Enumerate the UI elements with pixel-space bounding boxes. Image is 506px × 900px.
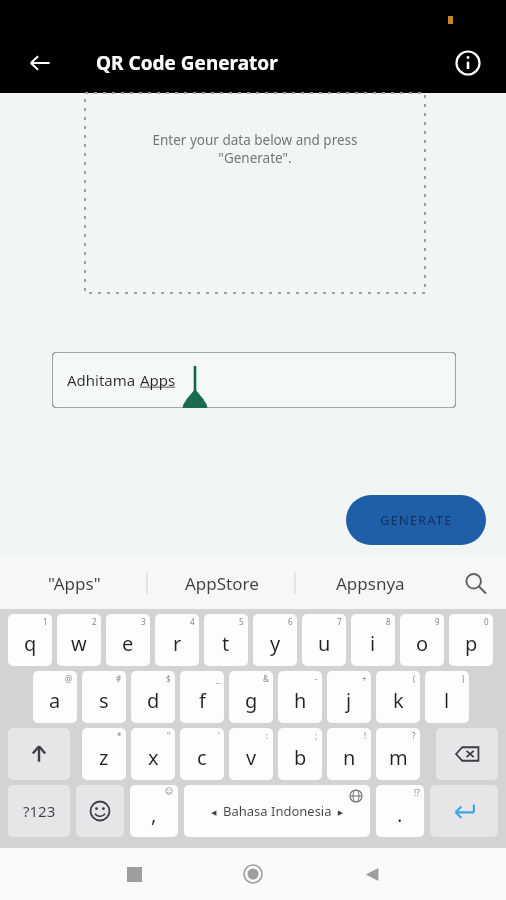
button[interactable]: .	[376, 785, 424, 837]
staticText: ?	[412, 730, 416, 741]
staticText: !	[364, 730, 367, 741]
staticText: )	[462, 673, 465, 684]
button[interactable]: o	[400, 614, 444, 666]
button[interactable]: GENERATE	[346, 495, 486, 545]
button[interactable]: Enter	[430, 785, 498, 837]
staticText: GENERATE	[380, 511, 453, 529]
staticText: k	[393, 687, 404, 714]
button[interactable]: e	[106, 614, 150, 666]
button[interactable]: d	[131, 671, 175, 723]
staticText: b	[294, 744, 307, 771]
staticText: @	[65, 673, 73, 684]
staticText: 8	[386, 616, 391, 627]
button[interactable]: s	[82, 671, 126, 723]
staticText: ,	[151, 801, 157, 828]
staticText: j	[346, 687, 352, 714]
staticText: 5	[239, 616, 244, 627]
staticText: !?	[414, 787, 420, 798]
button[interactable]: Backspace	[436, 728, 498, 780]
button[interactable]: y	[253, 614, 297, 666]
button[interactable]: j	[327, 671, 371, 723]
staticText: f	[199, 687, 206, 714]
staticText: z	[99, 744, 109, 771]
staticText: Appsnya	[336, 572, 405, 595]
staticText: y	[270, 630, 281, 657]
staticText: Bahasa Indonesia	[223, 802, 332, 820]
button[interactable]: Appsnya	[296, 557, 444, 609]
button[interactable]: m	[376, 728, 420, 780]
button[interactable]: Adhitama	[52, 352, 456, 408]
button[interactable]: h	[278, 671, 322, 723]
staticText: Apps	[140, 370, 176, 390]
staticText: g	[245, 687, 258, 714]
staticText: i	[370, 630, 376, 657]
staticText: #	[116, 673, 122, 684]
button[interactable]: Recent apps	[112, 852, 156, 896]
button[interactable]: t	[204, 614, 248, 666]
staticText: '	[218, 730, 220, 741]
button[interactable]: Back	[350, 852, 394, 896]
button[interactable]: Shift	[8, 728, 70, 780]
button[interactable]: Space	[184, 785, 370, 837]
staticText: 4	[190, 616, 195, 627]
staticText: 0	[484, 616, 489, 627]
staticText: -	[315, 673, 318, 684]
button[interactable]: r	[155, 614, 199, 666]
button[interactable]: a	[33, 671, 77, 723]
staticText: r	[173, 630, 182, 657]
staticText: ;	[315, 730, 318, 741]
staticText: .	[397, 801, 403, 828]
button[interactable]: Emoji	[76, 785, 124, 837]
button[interactable]: b	[278, 728, 322, 780]
staticText: 3	[141, 616, 146, 627]
button[interactable]: u	[302, 614, 346, 666]
staticText: 6	[288, 616, 293, 627]
button[interactable]: Back	[18, 41, 62, 85]
button[interactable]: Home	[231, 852, 275, 896]
button[interactable]: v	[229, 728, 273, 780]
staticText: d	[147, 687, 160, 714]
staticText: "	[167, 730, 171, 741]
staticText: ?123	[23, 801, 56, 821]
button[interactable]: q	[8, 614, 52, 666]
button[interactable]: ,	[130, 785, 178, 837]
staticText: m	[389, 744, 408, 771]
button[interactable]: l	[425, 671, 469, 723]
staticText: AppStore	[185, 572, 259, 595]
staticText: ☺	[165, 787, 174, 796]
button[interactable]: Symbols	[8, 785, 70, 837]
staticText: p	[465, 630, 478, 657]
staticText: ▸	[332, 804, 344, 819]
staticText: 9	[435, 616, 440, 627]
button[interactable]: c	[180, 728, 224, 780]
button[interactable]: Search	[444, 557, 506, 609]
button[interactable]: n	[327, 728, 371, 780]
staticText: s	[99, 687, 109, 714]
staticText: 7	[337, 616, 342, 627]
button[interactable]: x	[131, 728, 175, 780]
button[interactable]: AppStore	[148, 557, 296, 609]
staticText: $	[166, 673, 171, 684]
button[interactable]: k	[376, 671, 420, 723]
staticText: u	[318, 630, 331, 657]
staticText: Enter your data below and press "Generat…	[85, 131, 425, 167]
staticText: *	[117, 730, 122, 741]
button[interactable]: w	[57, 614, 101, 666]
staticText: QR Code Generator	[96, 50, 278, 76]
staticText: t	[222, 630, 230, 657]
staticText: c	[197, 744, 207, 771]
staticText: _	[216, 673, 220, 684]
button[interactable]: "Apps"	[0, 557, 148, 609]
button[interactable]: i	[351, 614, 395, 666]
button[interactable]: f	[180, 671, 224, 723]
button[interactable]: z	[82, 728, 126, 780]
button[interactable]: Info	[446, 41, 490, 85]
staticText: 2	[92, 616, 97, 627]
button[interactable]: p	[449, 614, 493, 666]
button[interactable]: g	[229, 671, 273, 723]
staticText: 1	[43, 616, 48, 627]
staticText: (	[413, 673, 416, 684]
staticText: h	[294, 687, 307, 714]
staticText: +	[362, 673, 367, 684]
staticText: :	[266, 730, 269, 741]
